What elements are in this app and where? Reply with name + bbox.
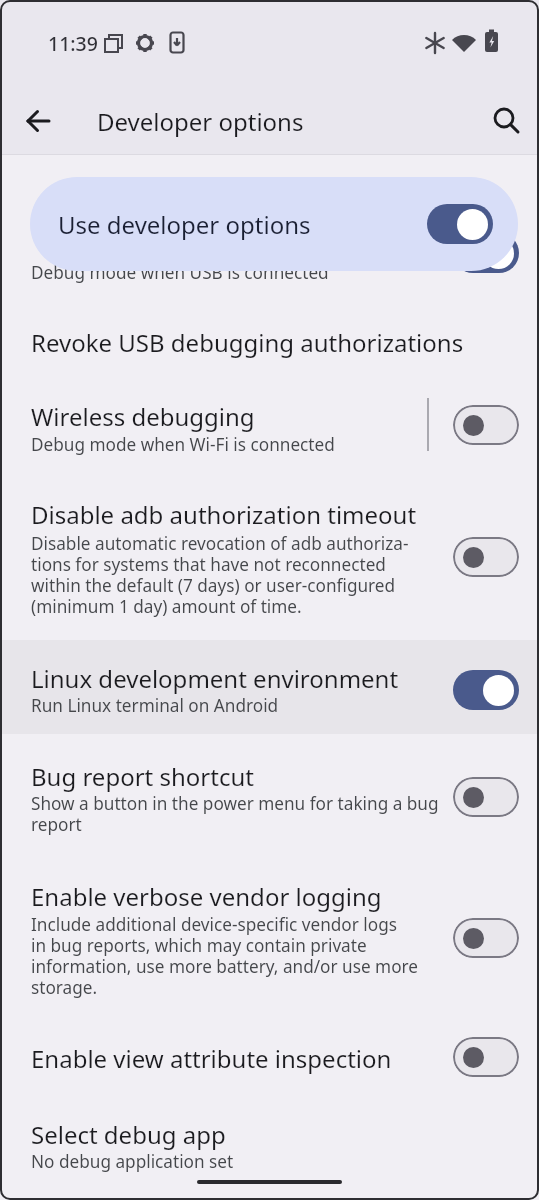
staticText: Revoke USB debugging authorizations bbox=[31, 326, 464, 359]
button[interactable] bbox=[453, 918, 519, 958]
staticText: Linux development environment bbox=[31, 662, 399, 695]
staticText: Developer options bbox=[97, 105, 304, 138]
staticText: No debug application set bbox=[31, 1150, 234, 1173]
staticText: Select debug app bbox=[31, 1118, 226, 1151]
button[interactable] bbox=[492, 106, 522, 136]
button[interactable] bbox=[453, 405, 519, 445]
staticText: 11:39 bbox=[48, 30, 98, 57]
button[interactable] bbox=[0, 390, 539, 470]
button[interactable]: Use developer options bbox=[30, 177, 518, 271]
button[interactable] bbox=[453, 670, 519, 710]
button[interactable] bbox=[0, 740, 539, 850]
staticText: Include additional device-specific vendo… bbox=[31, 913, 419, 1000]
button[interactable] bbox=[453, 537, 519, 577]
staticText: Enable verbose vendor logging bbox=[31, 880, 382, 913]
button[interactable] bbox=[0, 640, 539, 734]
button[interactable] bbox=[22, 106, 52, 136]
button[interactable] bbox=[453, 233, 519, 273]
staticText: Show a button in the power menu for taki… bbox=[31, 792, 439, 837]
button[interactable] bbox=[0, 1020, 539, 1100]
staticText: Use developer options bbox=[58, 208, 311, 241]
staticText: Debug mode when USB is connected bbox=[31, 261, 329, 284]
staticText: Disable adb authorization timeout bbox=[31, 498, 417, 531]
staticText: Bug report shortcut bbox=[31, 760, 254, 793]
button[interactable] bbox=[0, 860, 539, 1005]
staticText: Disable automatic revocation of adb auth… bbox=[31, 532, 409, 619]
button[interactable] bbox=[0, 480, 539, 625]
button[interactable] bbox=[0, 297, 539, 385]
staticText: Run Linux terminal on Android bbox=[31, 694, 279, 717]
button[interactable] bbox=[453, 777, 519, 817]
button[interactable] bbox=[0, 1105, 539, 1195]
staticText: Enable view attribute inspection bbox=[31, 1042, 392, 1075]
staticText: Debug mode when Wi-Fi is connected bbox=[31, 433, 335, 456]
staticText: Wireless debugging bbox=[31, 400, 255, 433]
button[interactable] bbox=[453, 1037, 519, 1077]
